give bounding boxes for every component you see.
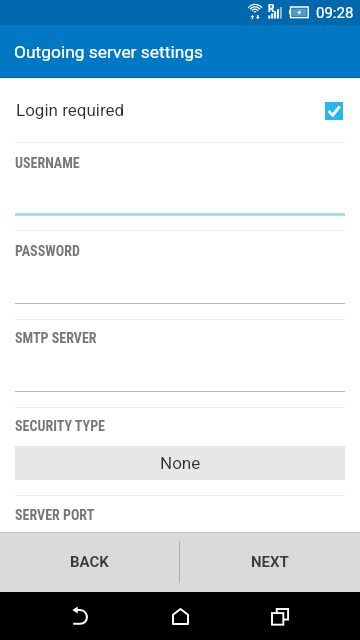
- button[interactable]: Recent apps: [250, 592, 310, 640]
- staticText: USERNAME: [15, 155, 80, 171]
- staticText: SECURITY TYPE: [15, 418, 105, 434]
- button[interactable]: [15, 345, 345, 394]
- button[interactable]: [15, 498, 345, 532]
- staticText: SMTP SERVER: [15, 330, 97, 346]
- button[interactable]: Login required: [0, 78, 360, 141]
- staticText: NEXT: [251, 553, 289, 571]
- button[interactable]: None: [15, 446, 345, 480]
- staticText: SERVER PORT: [15, 507, 95, 523]
- button[interactable]: BACK: [0, 532, 179, 592]
- staticText: BACK: [70, 553, 109, 571]
- staticText: PASSWORD: [15, 243, 80, 259]
- staticText: Outgoing server settings: [14, 42, 203, 62]
- staticText: R: [268, 3, 275, 15]
- button[interactable]: Home: [150, 592, 210, 640]
- staticText: Login required: [16, 100, 125, 120]
- staticText: None: [160, 453, 201, 473]
- staticText: 09:28: [316, 4, 354, 22]
- button[interactable]: NEXT: [180, 532, 360, 592]
- button[interactable]: [15, 258, 345, 306]
- button[interactable]: [15, 170, 345, 216]
- button[interactable]: Back: [50, 592, 110, 640]
